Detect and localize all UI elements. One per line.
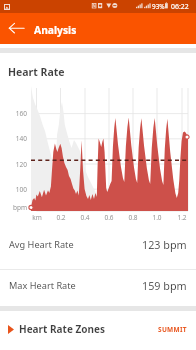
staticText: 123 bpm <box>142 237 187 252</box>
staticText: 100 <box>0 185 27 194</box>
staticText: 120 <box>0 160 27 169</box>
staticText: 1.2 <box>172 213 192 222</box>
staticText: 0.2 <box>51 213 71 222</box>
staticText: 140 <box>0 134 27 143</box>
staticText: Heart Rate Zones <box>19 322 106 336</box>
staticText: 0.8 <box>123 213 143 222</box>
staticText: 159 bpm <box>142 278 187 293</box>
staticText: 93% <box>152 2 165 11</box>
button[interactable]: Back <box>0 13 33 44</box>
staticText: Heart Rate <box>8 65 65 79</box>
staticText: 0.6 <box>99 213 119 222</box>
staticText: Analysis <box>34 23 77 37</box>
button[interactable]: Heart Rate Zones <box>0 311 196 347</box>
staticText: SUMMIT <box>158 325 187 334</box>
staticText: Avg Heart Rate <box>9 238 74 251</box>
staticText: 1.0 <box>147 213 167 222</box>
staticText: Max Heart Rate <box>9 279 76 292</box>
staticText: bpm <box>0 203 27 212</box>
staticText: 06:22 <box>171 2 189 11</box>
staticText: km <box>27 213 47 222</box>
button[interactable]: Max Heart Rate <box>0 269 196 302</box>
staticText: 0.4 <box>75 213 95 222</box>
staticText: 160 <box>0 109 27 118</box>
button[interactable]: Avg Heart Rate <box>0 219 196 269</box>
